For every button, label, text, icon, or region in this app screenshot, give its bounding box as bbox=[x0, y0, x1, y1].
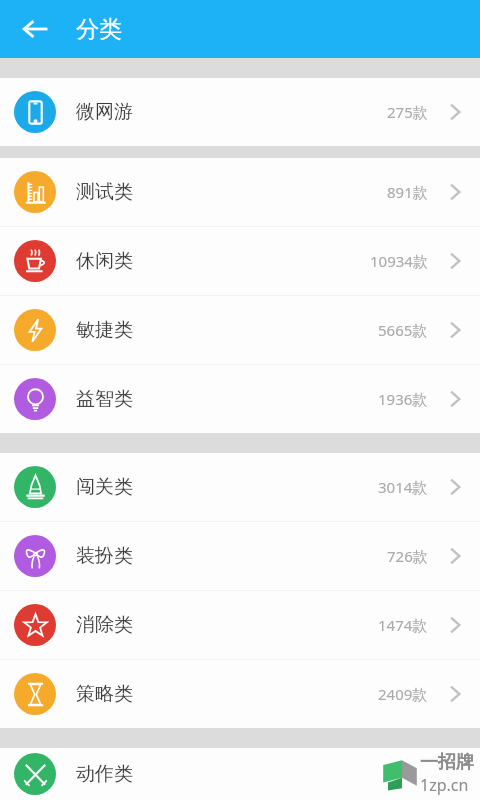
staticText: 策略类 bbox=[76, 682, 133, 706]
staticText: 5665款 bbox=[378, 320, 428, 340]
staticText: 1474款 bbox=[378, 615, 428, 635]
button[interactable]: 益智类 bbox=[0, 365, 480, 433]
button[interactable]: 测试类 bbox=[0, 158, 480, 226]
button[interactable]: 消除类 bbox=[0, 591, 480, 659]
staticText: 微网游 bbox=[76, 100, 133, 124]
staticText: 动作类 bbox=[76, 762, 133, 786]
button[interactable]: 装扮类 bbox=[0, 522, 480, 590]
button[interactable]: 动作类 bbox=[0, 748, 480, 800]
staticText: 一招牌 bbox=[420, 751, 474, 774]
button[interactable]: 休闲类 bbox=[0, 227, 480, 295]
staticText: 消除类 bbox=[76, 613, 133, 637]
staticText: 闯关类 bbox=[76, 475, 133, 499]
staticText: 益智类 bbox=[76, 387, 133, 411]
button[interactable]: Back bbox=[12, 6, 58, 52]
staticText: 休闲类 bbox=[76, 249, 133, 273]
button[interactable]: 闯关类 bbox=[0, 453, 480, 521]
staticText: 测试类 bbox=[76, 180, 133, 204]
staticText: 2409款 bbox=[378, 684, 428, 704]
staticText: 275款 bbox=[387, 102, 428, 122]
staticText: 1936款 bbox=[378, 389, 428, 409]
staticText: 891款 bbox=[387, 182, 428, 202]
staticText: 3014款 bbox=[378, 477, 428, 497]
button[interactable]: 策略类 bbox=[0, 660, 480, 728]
staticText: 10934款 bbox=[370, 251, 428, 271]
staticText: 726款 bbox=[387, 546, 428, 566]
button[interactable]: 敏捷类 bbox=[0, 296, 480, 364]
staticText: 装扮类 bbox=[76, 544, 133, 568]
staticText: 1zp.cn bbox=[420, 774, 469, 796]
staticText: 敏捷类 bbox=[76, 318, 133, 342]
staticText: 分类 bbox=[76, 15, 122, 44]
button[interactable]: 微网游 bbox=[0, 78, 480, 146]
